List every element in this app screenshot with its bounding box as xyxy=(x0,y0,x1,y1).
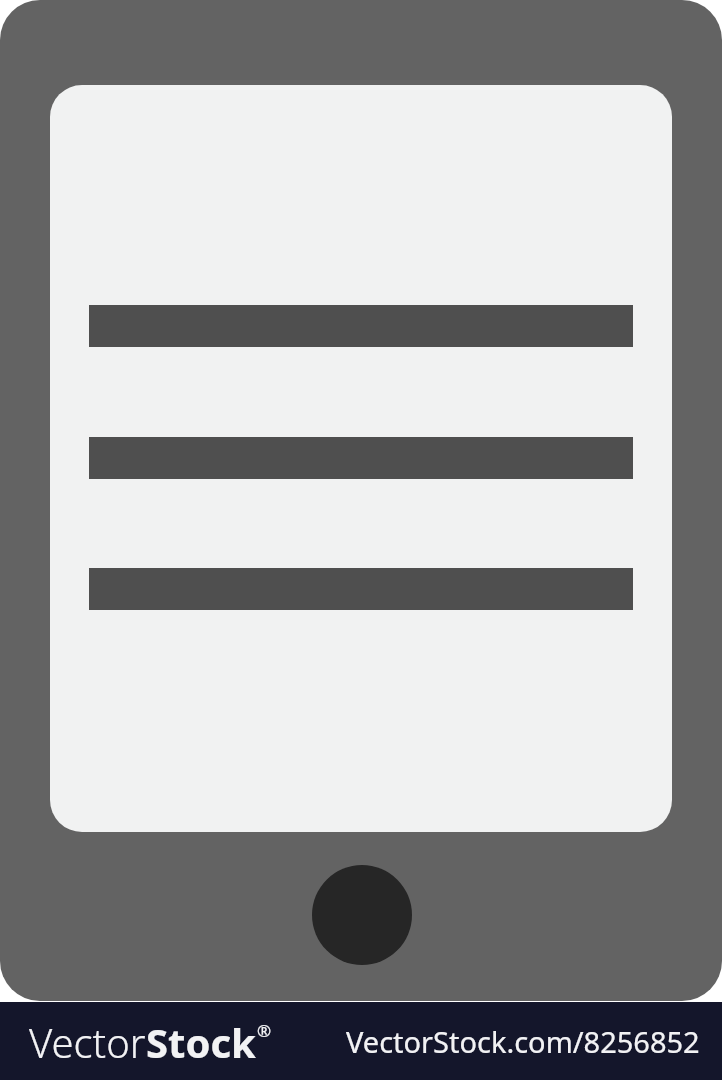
staticText: Stock xyxy=(146,1015,256,1069)
staticText: VectorStock.com/8256852 xyxy=(346,1022,700,1061)
button[interactable]: Home button xyxy=(312,865,412,965)
staticText: ® xyxy=(257,1019,272,1042)
staticText: Vector xyxy=(29,1015,146,1069)
button[interactable]: Text line xyxy=(50,85,672,832)
other: Tablet device xyxy=(0,0,722,1001)
